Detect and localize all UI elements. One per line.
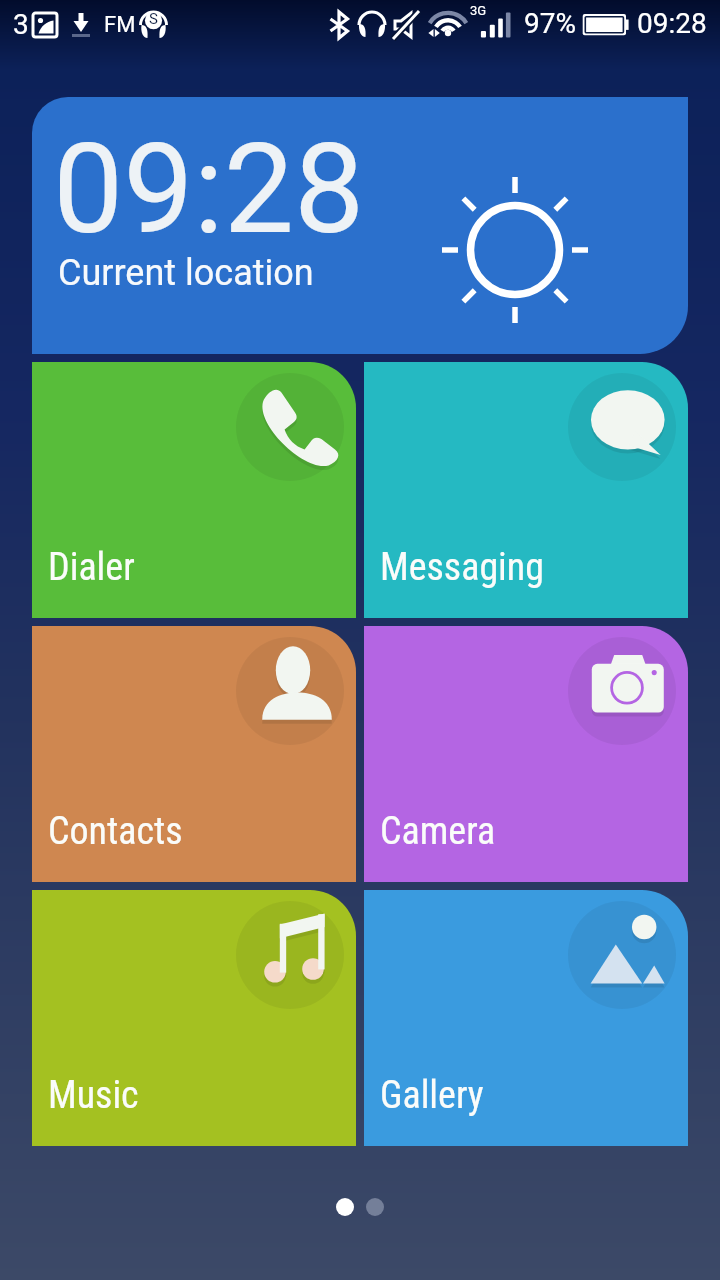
staticText: Gallery bbox=[380, 1073, 484, 1118]
staticText: 09:28 bbox=[637, 7, 707, 40]
staticText: FM bbox=[104, 12, 136, 38]
button[interactable]: 09:28 bbox=[32, 97, 688, 354]
button[interactable]: Dialer bbox=[32, 362, 356, 618]
staticText: 3 bbox=[13, 8, 29, 41]
button[interactable]: Music bbox=[32, 890, 356, 1146]
button[interactable]: Messaging bbox=[364, 362, 688, 618]
staticText: Camera bbox=[380, 809, 496, 854]
staticText: S bbox=[149, 10, 158, 28]
staticText: Contacts bbox=[48, 809, 183, 854]
staticText: Current location bbox=[58, 252, 314, 294]
staticText: Dialer bbox=[48, 545, 135, 590]
staticText: 3G bbox=[470, 3, 487, 18]
staticText: 97% bbox=[524, 7, 576, 40]
staticText: 09:28 bbox=[53, 116, 365, 262]
staticText: Messaging bbox=[380, 545, 544, 590]
staticText: Music bbox=[48, 1073, 139, 1118]
button[interactable]: Gallery bbox=[364, 890, 688, 1146]
button[interactable]: Camera bbox=[364, 626, 688, 882]
button[interactable]: Contacts bbox=[32, 626, 356, 882]
